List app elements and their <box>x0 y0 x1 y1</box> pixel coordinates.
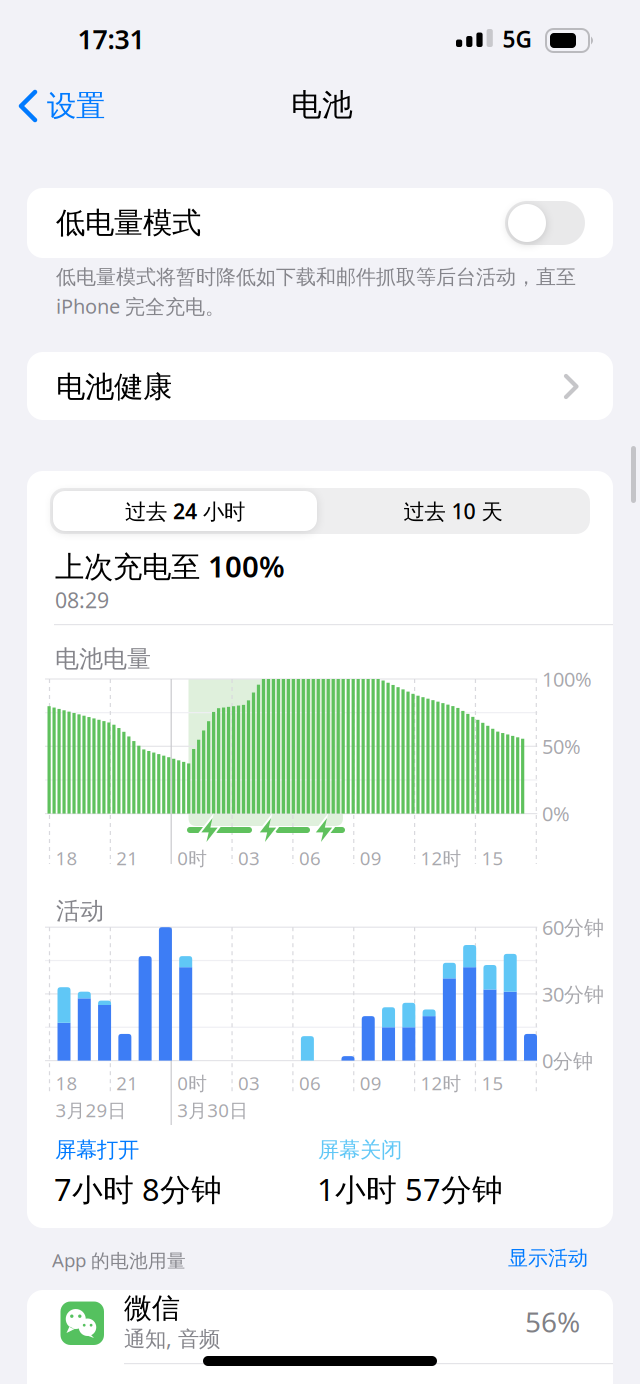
button[interactable]: 设置 <box>18 89 114 123</box>
staticText: 09 <box>360 1071 382 1095</box>
staticText: 低电量模式 <box>56 205 201 241</box>
staticText: 30分钟 <box>542 981 604 1007</box>
staticText: 通知, 音频 <box>124 1324 220 1352</box>
staticText: 21 <box>116 1071 138 1095</box>
staticText: 18 <box>55 846 77 870</box>
button[interactable]: 过去 10 天 <box>321 491 585 531</box>
staticText: 电池 <box>291 86 353 124</box>
staticText: iPhone 完全充电。 <box>56 293 225 319</box>
staticText: 过去 24 小时 <box>125 497 245 525</box>
staticText: 过去 10 天 <box>403 497 502 525</box>
staticText: 微信 <box>124 1291 180 1325</box>
button[interactable]: 过去 24 小时 <box>53 491 317 531</box>
staticText: 低电量模式将暂时降低如下载和邮件抓取等后台活动，直至 <box>56 265 576 289</box>
staticText: 56% <box>525 1303 580 1340</box>
staticText: 06 <box>299 1071 321 1095</box>
staticText: 5G <box>502 24 531 54</box>
staticText: 7小时 8分钟 <box>54 1169 222 1209</box>
button[interactable]: 显示活动 <box>468 1241 588 1275</box>
staticText: 屏幕关闭 <box>318 1137 402 1163</box>
staticText: 电池健康 <box>56 369 172 405</box>
staticText: 12时 <box>421 846 462 870</box>
button[interactable]: 电池健康 <box>27 352 613 420</box>
staticText: 屏幕打开 <box>55 1137 139 1163</box>
staticText: 0时 <box>177 1071 207 1095</box>
staticText: 60分钟 <box>542 914 604 940</box>
staticText: 12时 <box>421 1071 462 1095</box>
staticText: 21 <box>116 846 138 870</box>
staticText: 100% <box>542 666 592 692</box>
staticText: 50% <box>542 733 581 760</box>
staticText: 0时 <box>177 846 207 870</box>
staticText: 06 <box>299 846 321 870</box>
staticText: 0% <box>542 800 570 827</box>
staticText: 3月30日 <box>177 1098 248 1122</box>
staticText: 15 <box>481 1071 503 1095</box>
staticText: 1小时 57分钟 <box>317 1169 503 1209</box>
staticText: 0分钟 <box>542 1047 593 1074</box>
staticText: 3月29日 <box>55 1098 126 1122</box>
staticText: 03 <box>238 846 260 870</box>
staticText: 15 <box>481 846 503 870</box>
button[interactable]: 微信 <box>27 1290 613 1384</box>
staticText: 03 <box>238 1071 260 1095</box>
staticText: App 的电池用量 <box>52 1248 186 1272</box>
staticText: 09 <box>360 846 382 870</box>
staticText: 电池电量 <box>55 644 151 674</box>
staticText: 18 <box>55 1071 77 1095</box>
staticText: 上次充电至 100% <box>55 546 285 585</box>
staticText: 显示活动 <box>508 1246 588 1270</box>
staticText: 设置 <box>47 88 105 124</box>
button[interactable]: 低电量模式 <box>505 201 585 245</box>
staticText: 17:31 <box>77 21 144 57</box>
staticText: 活动 <box>56 896 104 926</box>
staticText: 08:29 <box>55 586 109 614</box>
